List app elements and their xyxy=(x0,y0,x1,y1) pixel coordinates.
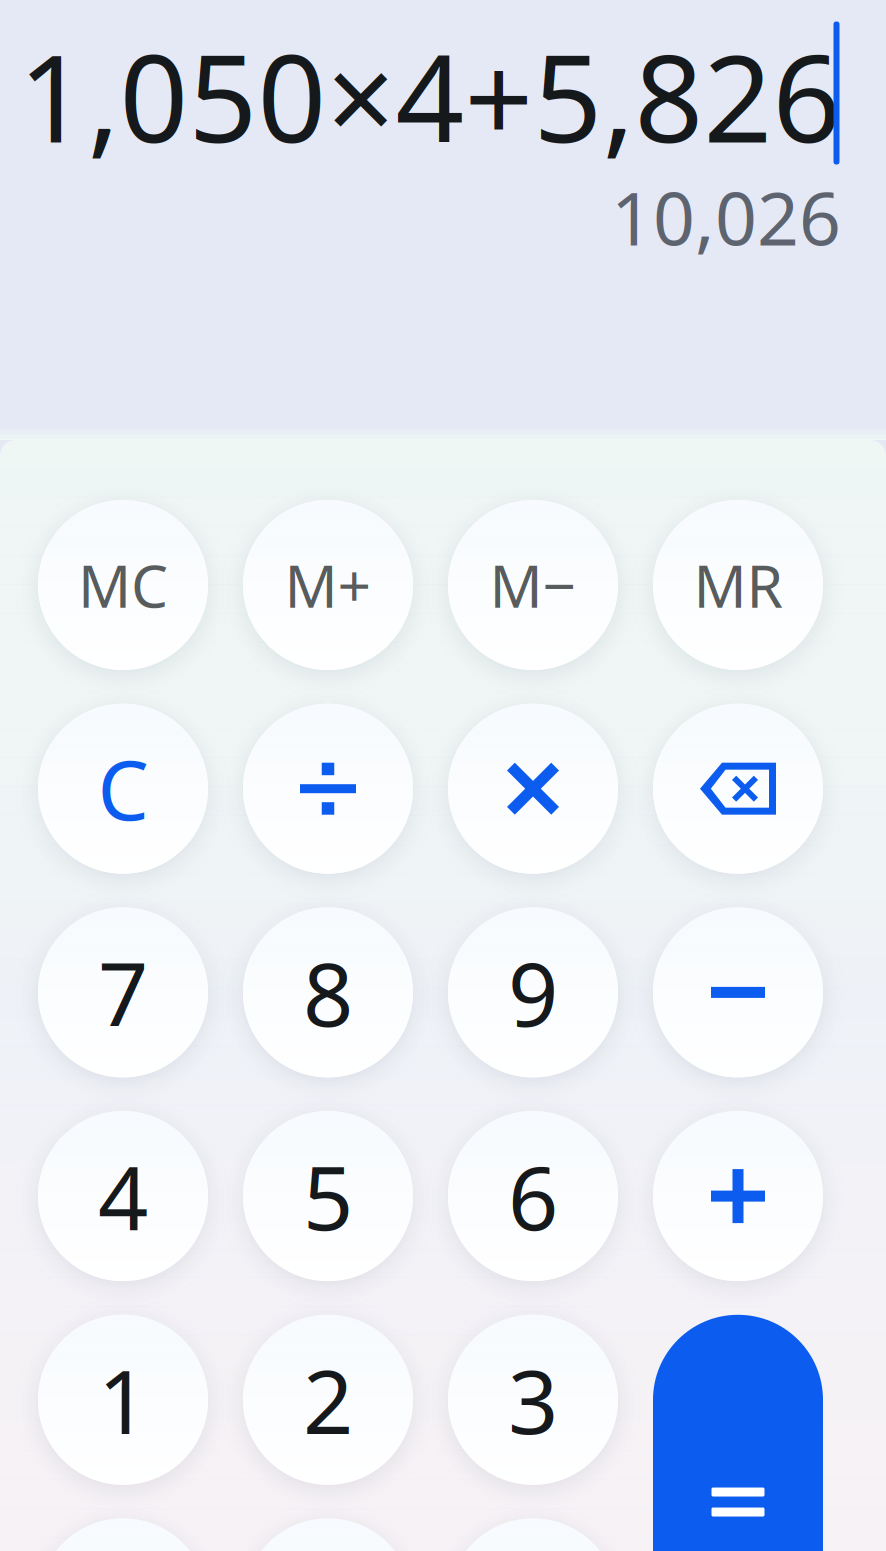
button[interactable]: 5 xyxy=(243,1111,413,1281)
button[interactable]: 1 xyxy=(38,1315,208,1485)
staticText: 2 xyxy=(303,1341,353,1458)
button[interactable]: % xyxy=(448,1518,618,1551)
staticText: 6 xyxy=(508,1138,558,1255)
staticText: 7 xyxy=(98,934,148,1051)
button[interactable]: Equals xyxy=(653,1315,823,1551)
staticText: 3 xyxy=(508,1341,558,1458)
staticText: 5 xyxy=(303,1138,353,1255)
button[interactable]: 4 xyxy=(38,1111,208,1281)
staticText: 1 xyxy=(98,1341,148,1458)
button[interactable]: M+ xyxy=(243,500,413,670)
button[interactable]: Backspace xyxy=(653,704,823,874)
button[interactable]: 7 xyxy=(38,907,208,1077)
staticText: MR xyxy=(693,546,782,624)
button[interactable]: 2 xyxy=(243,1315,413,1485)
staticText: M+ xyxy=(284,546,371,624)
button[interactable]: Clear xyxy=(38,704,208,874)
staticText: 8 xyxy=(303,934,353,1051)
staticText: M− xyxy=(489,546,576,624)
button[interactable]: Multiply xyxy=(448,704,618,874)
staticText: MC xyxy=(78,546,168,624)
button[interactable]: Subtract xyxy=(653,907,823,1077)
button[interactable]: . xyxy=(243,1518,413,1551)
button[interactable]: MC xyxy=(38,500,208,670)
staticText: 9 xyxy=(508,934,558,1051)
staticText: 10,026 xyxy=(611,168,841,266)
staticText: C xyxy=(97,735,148,843)
staticText: 1,050×4+5,826 xyxy=(18,16,841,176)
button[interactable]: 9 xyxy=(448,907,618,1077)
button[interactable]: M− xyxy=(448,500,618,670)
button[interactable]: 0 xyxy=(38,1518,208,1551)
button[interactable]: MR xyxy=(653,500,823,670)
staticText: 4 xyxy=(98,1138,148,1255)
button[interactable]: 3 xyxy=(448,1315,618,1485)
button[interactable]: 6 xyxy=(448,1111,618,1281)
button[interactable]: 8 xyxy=(243,907,413,1077)
button[interactable]: Divide xyxy=(243,704,413,874)
button[interactable]: Add xyxy=(653,1111,823,1281)
